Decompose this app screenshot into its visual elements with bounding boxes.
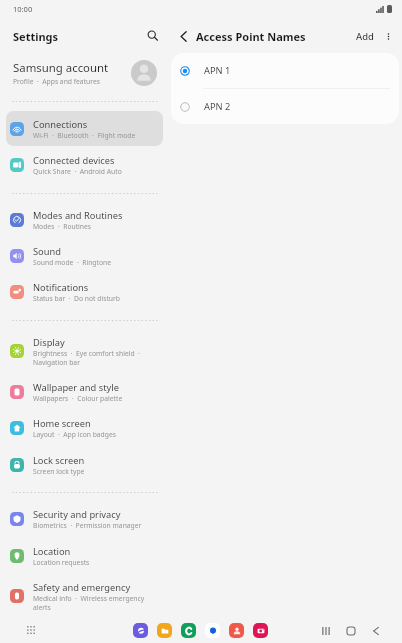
staticText: Security and privacy — [33, 508, 121, 521]
staticText: Status bar · Do not disturb — [33, 294, 120, 303]
staticText: Location requests — [33, 558, 90, 567]
button[interactable]: All apps — [23, 622, 39, 638]
staticText: Home screen — [33, 417, 91, 430]
staticText: APN 1 — [204, 64, 231, 77]
button[interactable]: Home — [342, 622, 359, 639]
button[interactable]: internet — [133, 623, 148, 638]
staticText: Safety and emergency — [33, 581, 131, 594]
staticText: Connected devices — [33, 154, 115, 167]
button[interactable]: Display — [6, 330, 163, 372]
staticText: APN 2 — [204, 100, 231, 113]
staticText: 10:00 — [13, 4, 33, 14]
button[interactable]: messages — [205, 623, 220, 638]
button[interactable]: phone — [181, 623, 196, 638]
staticText: Modes and Routines — [33, 209, 123, 222]
staticText: Medical info · Wireless emergency alerts — [33, 594, 145, 612]
staticText: Wallpapers · Colour palette — [33, 394, 123, 403]
staticText: Samsung account — [13, 60, 109, 76]
staticText: Quick Share · Android Auto — [33, 167, 122, 176]
staticText: Connections — [33, 118, 88, 131]
button[interactable]: Wallpaper and style — [6, 374, 163, 409]
staticText: Display — [33, 336, 65, 349]
staticText: Sound mode · Ringtone — [33, 258, 111, 267]
staticText: Sound — [33, 245, 61, 258]
staticText: Screen lock type — [33, 467, 85, 476]
staticText: Add — [356, 30, 374, 43]
button[interactable]: Home screen — [6, 410, 163, 445]
staticText: Modes · Routines — [33, 222, 92, 231]
staticText: Layout · App icon badges — [33, 430, 116, 439]
staticText: Notifications — [33, 281, 89, 294]
button[interactable]: APN 2 — [171, 89, 399, 124]
button[interactable]: More options — [380, 28, 396, 44]
staticText: Wallpaper and style — [33, 381, 119, 394]
button[interactable]: Back — [174, 27, 192, 45]
button[interactable]: gallery — [253, 623, 268, 638]
staticText: Profile · Apps and features — [13, 77, 100, 86]
button[interactable]: Samsung account — [0, 55, 166, 90]
button[interactable]: Modes and Routines — [6, 202, 163, 237]
button[interactable]: Sound — [6, 238, 163, 273]
button[interactable]: Search — [141, 24, 164, 47]
button[interactable]: Safety and emergency — [6, 575, 163, 617]
button[interactable]: Location — [6, 538, 163, 573]
button[interactable]: contacts — [229, 623, 244, 638]
staticText: Lock screen — [33, 454, 85, 467]
staticText: Wi-Fi · Bluetooth · Flight mode — [33, 131, 136, 140]
button[interactable]: Add — [353, 26, 377, 47]
button[interactable]: Security and privacy — [6, 501, 163, 536]
staticText: Brightness · Eye comfort shield · Naviga… — [33, 349, 140, 367]
button[interactable]: Back — [367, 622, 384, 639]
button[interactable]: Connected devices — [6, 147, 163, 182]
staticText: Biometrics · Permission manager — [33, 521, 142, 530]
button[interactable]: Lock screen — [6, 447, 163, 482]
button[interactable]: Notifications — [6, 274, 163, 309]
staticText: Access Point Names — [196, 29, 306, 44]
staticText: Settings — [13, 29, 59, 44]
button[interactable]: APN 1 — [171, 53, 399, 88]
staticText: Location — [33, 545, 71, 558]
button[interactable]: files — [157, 623, 172, 638]
button[interactable]: Recents — [317, 622, 334, 639]
button[interactable]: Connections — [6, 111, 163, 146]
